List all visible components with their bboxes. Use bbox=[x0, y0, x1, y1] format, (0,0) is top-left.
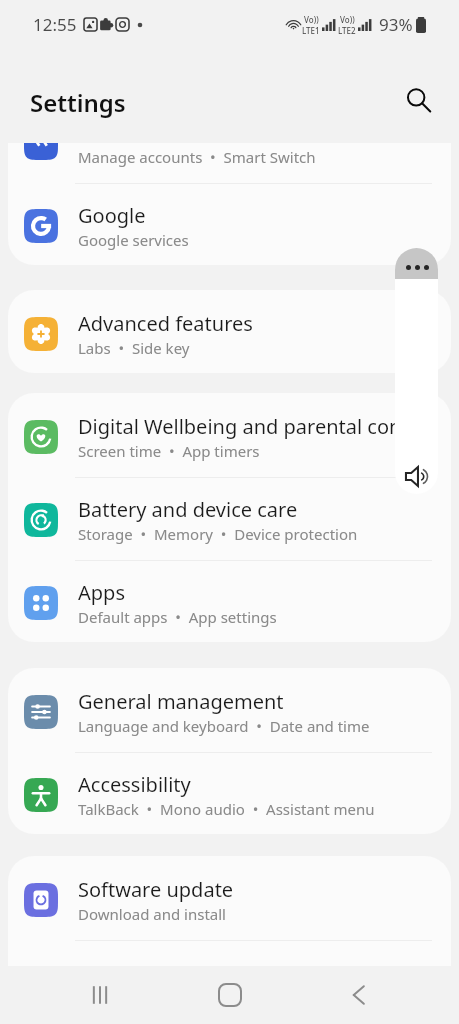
button[interactable]: Home bbox=[200, 966, 260, 1024]
staticText: Labs • Side key bbox=[78, 338, 190, 358]
staticText: General management bbox=[78, 688, 284, 715]
staticText: Vo)) bbox=[340, 14, 355, 25]
button[interactable]: Back bbox=[329, 966, 389, 1024]
staticText: Battery and device care bbox=[78, 496, 298, 523]
staticText: LTE1 bbox=[302, 25, 320, 36]
staticText: Software update bbox=[78, 876, 234, 903]
button[interactable]: Volume panel bbox=[395, 248, 438, 494]
button[interactable]: Accessibility bbox=[8, 751, 451, 834]
staticText: LTE2 bbox=[338, 25, 356, 36]
button[interactable]: Battery and device care bbox=[8, 476, 451, 559]
staticText: Download and install bbox=[78, 904, 226, 924]
staticText: 93% bbox=[379, 13, 413, 36]
staticText: Screen time • App timers bbox=[78, 441, 260, 461]
staticText: Digital Wellbeing and parental controls bbox=[78, 413, 438, 440]
staticText: Settings bbox=[30, 86, 126, 119]
staticText: TalkBack • Mono audio • Assistant menu bbox=[78, 799, 375, 819]
staticText: Manage accounts • Smart Switch bbox=[78, 147, 316, 167]
staticText: Advanced features bbox=[78, 310, 253, 337]
staticText: 12:55 bbox=[33, 13, 77, 36]
staticText: Apps bbox=[78, 579, 125, 606]
staticText: Google services bbox=[78, 230, 189, 250]
button[interactable]: General management bbox=[8, 668, 451, 751]
staticText: Google bbox=[78, 202, 146, 229]
button[interactable]: Google bbox=[8, 182, 451, 265]
button[interactable]: Software update bbox=[8, 856, 451, 939]
button[interactable]: Digital Wellbeing and parental controls bbox=[8, 393, 451, 476]
staticText: Default apps • App settings bbox=[78, 607, 277, 627]
staticText: Vo)) bbox=[304, 14, 319, 25]
button[interactable]: Advanced features bbox=[8, 290, 451, 373]
staticText: Storage • Memory • Device protection bbox=[78, 524, 358, 544]
staticText: Language and keyboard • Date and time bbox=[78, 716, 370, 736]
button[interactable]: Recents bbox=[70, 966, 130, 1024]
staticText: Accessibility bbox=[78, 771, 191, 798]
button[interactable]: Search bbox=[396, 78, 440, 122]
button[interactable]: Apps bbox=[8, 559, 451, 642]
button[interactable]: Samsung account bbox=[8, 143, 451, 182]
